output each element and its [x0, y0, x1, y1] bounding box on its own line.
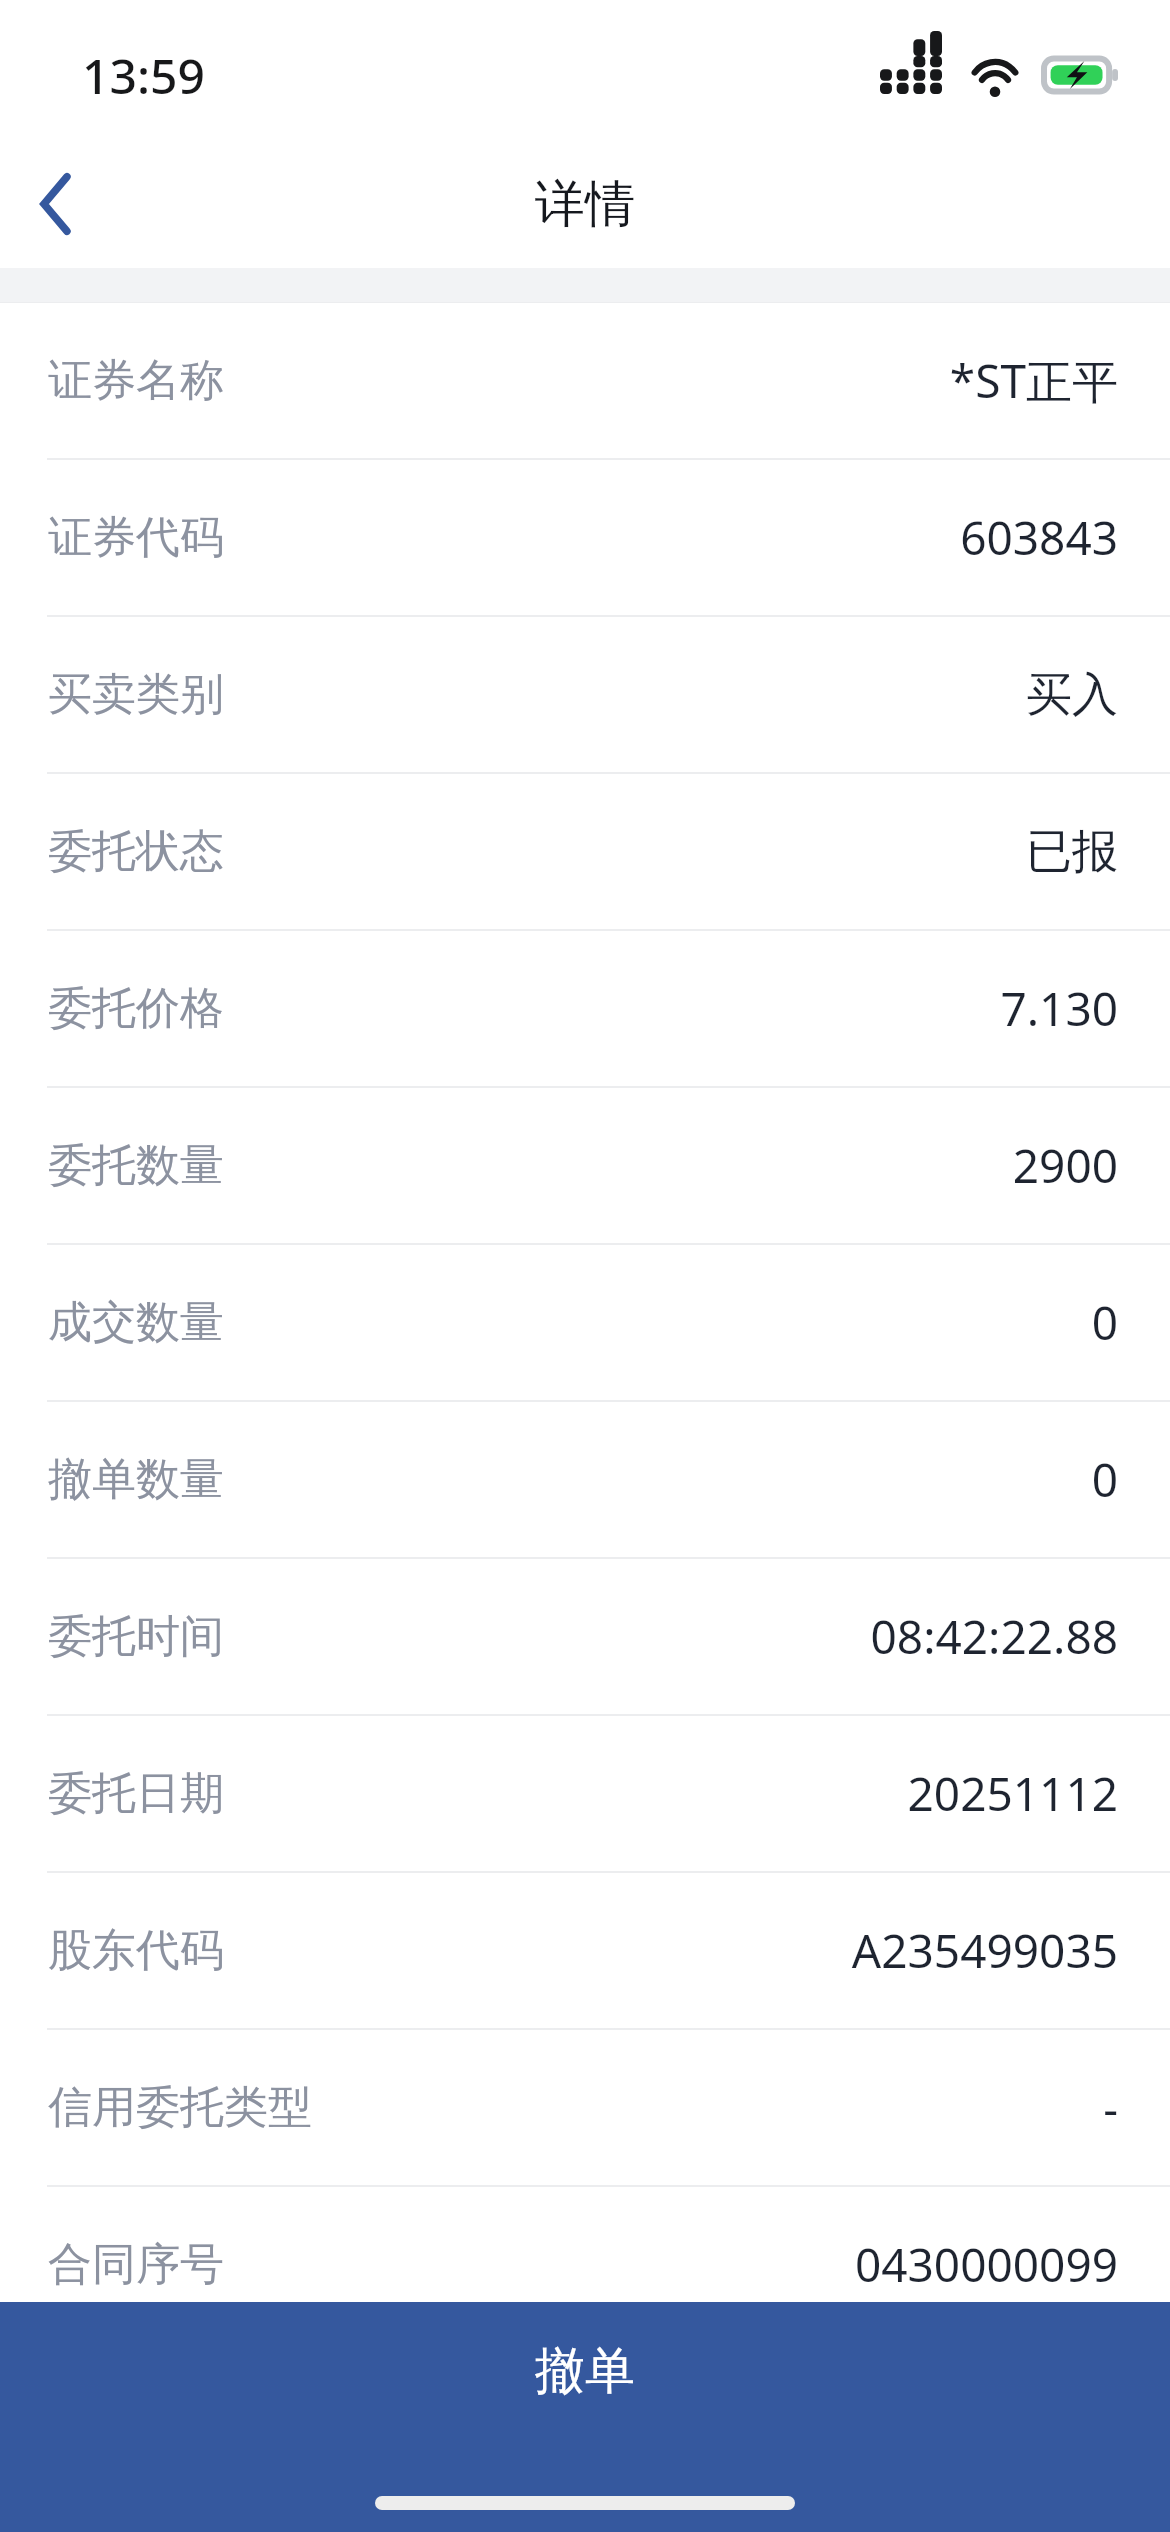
button[interactable]: 委托数量	[0, 1088, 1170, 1243]
staticText: 委托时间	[48, 1609, 224, 1664]
button[interactable]: 证券代码	[0, 460, 1170, 615]
staticText: 买卖类别	[48, 667, 224, 722]
staticText: 已报	[1026, 823, 1118, 881]
staticText: 证券名称	[48, 353, 224, 408]
staticText: 委托状态	[48, 824, 224, 879]
staticText: 合同序号	[48, 2237, 224, 2292]
staticText: 证券代码	[48, 510, 224, 565]
button[interactable]: 股东代码	[0, 1873, 1170, 2028]
staticText: 2900	[1012, 1134, 1118, 1197]
button[interactable]: 信用委托类型	[0, 2030, 1170, 2185]
staticText: 0	[1091, 1291, 1118, 1354]
staticText: 08:42:22.88	[870, 1605, 1118, 1668]
button[interactable]: 返回	[0, 149, 110, 259]
button[interactable]: 合同序号	[0, 2187, 1170, 2342]
staticText: 13:59	[82, 43, 205, 108]
staticText: 委托价格	[48, 981, 224, 1036]
button[interactable]: 委托时间	[0, 1559, 1170, 1714]
staticText: 撤单	[535, 2340, 635, 2403]
staticText: 0	[1091, 1448, 1118, 1511]
button[interactable]: 委托日期	[0, 1716, 1170, 1871]
staticText: 委托数量	[48, 1138, 224, 1193]
staticText: 成交数量	[48, 1295, 224, 1350]
button[interactable]: 成交数量	[0, 1245, 1170, 1400]
staticText: 20251112	[907, 1762, 1118, 1825]
button[interactable]: 证券名称	[0, 303, 1170, 458]
staticText: 0430000099	[854, 2233, 1118, 2296]
staticText: 7.130	[1000, 977, 1118, 1040]
button[interactable]: 委托状态	[0, 774, 1170, 929]
button[interactable]: 委托价格	[0, 931, 1170, 1086]
staticText: A235499035	[851, 1919, 1118, 1982]
staticText: 603843	[960, 506, 1118, 569]
staticText: -	[1103, 2076, 1118, 2139]
staticText: 信用委托类型	[48, 2080, 312, 2135]
button[interactable]: 买卖类别	[0, 617, 1170, 772]
staticText: 详情	[535, 173, 635, 236]
button[interactable]: 撤单	[0, 2302, 1170, 2532]
button[interactable]: 撤单数量	[0, 1402, 1170, 1557]
staticText: 买入	[1026, 666, 1118, 724]
staticText: 委托日期	[48, 1766, 224, 1821]
staticText: *ST正平	[949, 349, 1118, 412]
staticText: 撤单数量	[48, 1452, 224, 1507]
staticText: 股东代码	[48, 1923, 224, 1978]
